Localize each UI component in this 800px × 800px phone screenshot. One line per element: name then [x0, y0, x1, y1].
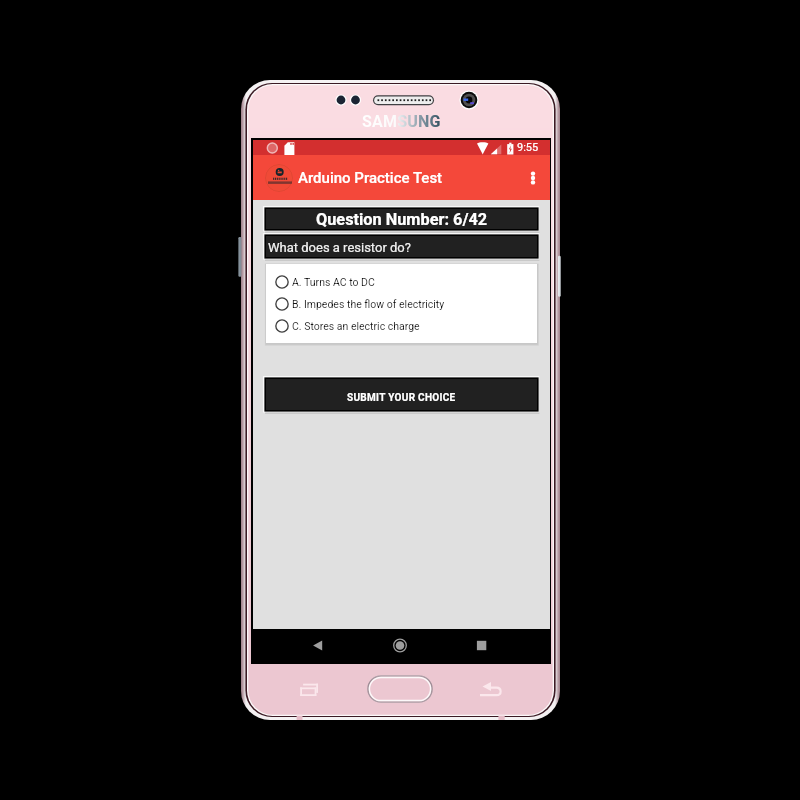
- staticText: What does a resistor do?: [268, 240, 411, 255]
- button[interactable]: More options: [519, 155, 547, 200]
- button[interactable]: What does a resistor do?: [266, 236, 537, 257]
- staticText: SUBMIT YOUR CHOICE: [347, 392, 456, 404]
- staticText: Arduino Practice Test: [298, 169, 443, 187]
- button[interactable]: A. Turns AC to DC: [266, 275, 537, 289]
- staticText: 9:55: [517, 141, 539, 154]
- staticText: SAMSUNG: [362, 112, 441, 127]
- button[interactable]: C. Stores an electric charge: [266, 319, 537, 333]
- button[interactable]: Arduino Practice Test logo: [265, 164, 293, 192]
- button[interactable]: Question Number: 6/42: [266, 209, 537, 229]
- staticText: B. Impedes the flow of electricity: [292, 298, 445, 310]
- staticText: C. Stores an electric charge: [292, 320, 420, 332]
- button[interactable]: B. Impedes the flow of electricity: [266, 297, 537, 311]
- staticText: Question Number: 6/42: [316, 210, 488, 229]
- staticText: A. Turns AC to DC: [292, 276, 375, 288]
- button[interactable]: SUBMIT YOUR CHOICE: [266, 379, 537, 410]
